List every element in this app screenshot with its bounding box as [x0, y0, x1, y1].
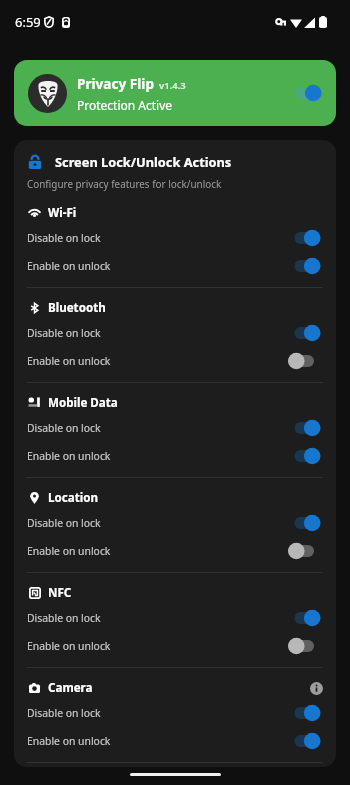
button[interactable]: Disable on lock — [27, 604, 323, 632]
staticText: Disable on lock — [27, 326, 101, 340]
button[interactable] — [287, 513, 323, 533]
staticText: 6:59 — [15, 13, 41, 31]
staticText: NFC — [48, 585, 72, 601]
staticText: Disable on lock — [27, 611, 101, 625]
button[interactable]: Enable on unlock — [27, 632, 323, 660]
staticText: Mobile Data — [48, 395, 118, 411]
staticText: v1.4.3 — [159, 79, 186, 92]
staticText: Bluetooth — [48, 300, 106, 316]
staticText: Enable on unlock — [27, 259, 111, 273]
staticText: Disable on lock — [27, 706, 101, 720]
button[interactable] — [287, 446, 323, 466]
staticText: Enable on unlock — [27, 544, 111, 558]
button[interactable]: Disable on lock — [27, 509, 323, 537]
staticText: Disable on lock — [27, 516, 101, 530]
button[interactable]: Enable on unlock — [27, 442, 323, 470]
button[interactable]: Enable on unlock — [27, 347, 323, 375]
button[interactable] — [287, 608, 323, 628]
staticText: Privacy Flip — [77, 74, 154, 93]
button[interactable]: Disable on lock — [27, 224, 323, 252]
button[interactable]: Enable on unlock — [27, 537, 323, 565]
staticText: Location — [48, 490, 98, 506]
button[interactable] — [287, 351, 323, 371]
staticText: Enable on unlock — [27, 639, 111, 653]
button[interactable]: Disable on lock — [27, 699, 323, 727]
button[interactable] — [287, 731, 323, 751]
staticText: Enable on unlock — [27, 449, 111, 463]
button[interactable] — [287, 228, 323, 248]
button[interactable] — [288, 83, 324, 103]
button[interactable]: Info — [309, 681, 323, 695]
staticText: Protection Active — [77, 97, 173, 113]
button[interactable]: Privacy Flip — [14, 60, 336, 126]
button[interactable] — [287, 323, 323, 343]
staticText: Wi-Fi — [48, 205, 77, 221]
staticText: Screen Lock/Unlock Actions — [55, 153, 232, 170]
staticText: Configure privacy features for lock/unlo… — [27, 177, 222, 190]
staticText: Enable on unlock — [27, 354, 111, 368]
button[interactable] — [287, 541, 323, 561]
button[interactable]: Disable on lock — [27, 414, 323, 442]
button[interactable]: Disable on lock — [27, 319, 323, 347]
staticText: Disable on lock — [27, 421, 101, 435]
button[interactable] — [287, 418, 323, 438]
button[interactable] — [287, 636, 323, 656]
staticText: Enable on unlock — [27, 734, 111, 748]
staticText: Disable on lock — [27, 231, 101, 245]
button[interactable] — [287, 256, 323, 276]
button[interactable]: Enable on unlock — [27, 727, 323, 755]
staticText: Camera — [48, 680, 93, 696]
button[interactable] — [287, 703, 323, 723]
button[interactable]: Enable on unlock — [27, 252, 323, 280]
